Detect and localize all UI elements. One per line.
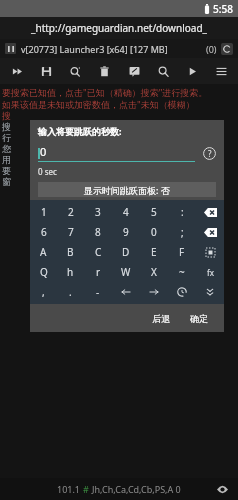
staticText: 0 sec: [38, 166, 57, 177]
button[interactable]: E: [140, 242, 168, 262]
staticText: E: [151, 245, 157, 259]
staticText: 搜: [2, 121, 11, 132]
button[interactable]: [112, 282, 140, 302]
button[interactable]: D: [112, 242, 140, 262]
staticText: 行: [2, 132, 11, 143]
staticText: ~: [179, 265, 185, 279]
staticText: 5: [151, 205, 157, 219]
button[interactable]: 4: [112, 202, 140, 222]
staticText: .: [69, 285, 72, 299]
button[interactable]: [140, 282, 168, 302]
staticText: F: [179, 245, 185, 259]
staticText: 2: [68, 205, 74, 219]
staticText: (0): [206, 43, 217, 55]
staticText: W: [121, 265, 131, 279]
staticText: r: [96, 265, 101, 279]
staticText: D: [122, 245, 130, 259]
button[interactable]: r: [84, 262, 112, 282]
button[interactable]: ~: [168, 262, 196, 282]
staticText: 显示时间跳跃面板: 否: [84, 184, 170, 196]
staticText: 5:58: [213, 2, 233, 16]
staticText: 后退: [152, 313, 170, 324]
button[interactable]: Edit: [123, 60, 145, 82]
button[interactable]: History: [168, 282, 196, 302]
button[interactable]: Collapse keyboard: [196, 282, 224, 302]
button[interactable]: 6: [30, 222, 57, 242]
button[interactable]: C: [84, 242, 112, 262]
staticText: 101.1: [57, 483, 83, 495]
button[interactable]: Visibility: [216, 483, 228, 495]
staticText: 0: [151, 225, 157, 239]
staticText: -: [96, 285, 100, 299]
staticText: 3: [95, 205, 101, 219]
staticText: 要搜索已知值，点击"已知（精确）搜索"进行搜索。: [2, 86, 208, 98]
staticText: C: [95, 245, 102, 259]
staticText: 确定: [190, 313, 208, 324]
staticText: Jh,Ch,Ca,Cd,Cb,PS,A 0: [92, 483, 181, 495]
staticText: 7: [68, 225, 74, 239]
button[interactable]: Search: [152, 60, 174, 82]
button[interactable]: X: [140, 262, 168, 282]
button[interactable]: 8: [84, 222, 112, 242]
button[interactable]: .: [57, 282, 84, 302]
button[interactable]: Play: [181, 60, 203, 82]
staticText: 用: [2, 154, 11, 165]
staticText: A: [40, 245, 47, 259]
button[interactable]: :: [168, 202, 196, 222]
staticText: B: [67, 245, 74, 259]
staticText: 6: [41, 225, 47, 239]
staticText: 0: [40, 144, 47, 159]
staticText: 要: [2, 165, 11, 176]
button[interactable]: A: [30, 242, 57, 262]
button[interactable]: 0: [140, 222, 168, 242]
staticText: h: [67, 265, 74, 279]
staticText: 窗: [2, 176, 11, 187]
button[interactable]: 1: [30, 202, 57, 222]
button[interactable]: 后退: [146, 309, 176, 328]
button[interactable]: h: [57, 262, 84, 282]
button[interactable]: Delete: [93, 60, 115, 82]
button[interactable]: Search unknown: [64, 60, 86, 82]
staticText: _http://gameguardian.net/download_: [31, 21, 207, 35]
button[interactable]: Backspace: [196, 222, 224, 242]
staticText: v[20773] Launcher3 [x64] [127 MB]: [21, 43, 168, 55]
button[interactable]: 7: [57, 222, 84, 242]
staticText: fx: [207, 267, 214, 278]
button[interactable]: B: [57, 242, 84, 262]
staticText: Q: [40, 265, 48, 279]
button[interactable]: Save: [35, 60, 57, 82]
staticText: 8: [95, 225, 101, 239]
staticText: 您: [2, 143, 11, 154]
button[interactable]: Fast forward: [6, 60, 28, 82]
staticText: 如果该值是未知或加密数值，点击"未知（模糊）: [2, 98, 195, 110]
staticText: 输入将要跳跃的秒数:: [38, 125, 122, 137]
button[interactable]: 3: [84, 202, 112, 222]
staticText: ?: [208, 148, 212, 159]
staticText: 9: [123, 225, 129, 239]
staticText: X: [151, 265, 157, 279]
button[interactable]: Refresh: [221, 43, 233, 55]
button[interactable]: Pause: [5, 43, 16, 54]
button[interactable]: Q: [30, 262, 57, 282]
button[interactable]: F: [168, 242, 196, 262]
button[interactable]: fx: [196, 262, 224, 282]
button[interactable]: Help: [203, 147, 216, 160]
button[interactable]: -: [84, 282, 112, 302]
button[interactable]: 2: [57, 202, 84, 222]
staticText: :: [181, 205, 184, 219]
button[interactable]: ;: [168, 222, 196, 242]
button[interactable]: 确定: [184, 309, 214, 328]
button[interactable]: ,: [30, 282, 57, 302]
button[interactable]: W: [112, 262, 140, 282]
staticText: ;: [181, 225, 184, 239]
button[interactable]: 5: [140, 202, 168, 222]
button[interactable]: Menu: [210, 60, 232, 82]
staticText: 搜: [2, 110, 11, 121]
staticText: 4: [123, 205, 129, 219]
staticText: #: [83, 483, 92, 495]
button[interactable]: Select all: [196, 242, 224, 262]
button[interactable]: Backspace: [196, 202, 224, 222]
button[interactable]: 显示时间跳跃面板: 否: [38, 182, 216, 197]
button[interactable]: 9: [112, 222, 140, 242]
staticText: ,: [42, 285, 45, 299]
